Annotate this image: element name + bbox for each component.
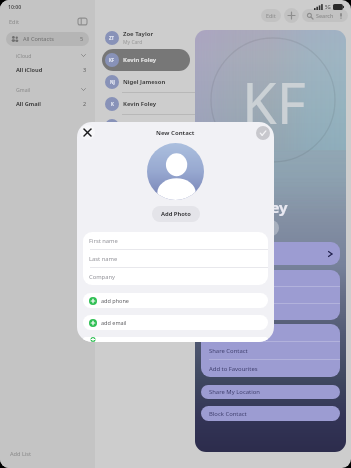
button[interactable]: Add List	[10, 444, 95, 464]
button[interactable]: mobile	[201, 270, 340, 286]
staticText: Last name	[89, 255, 118, 263]
staticText: 2	[83, 100, 87, 107]
staticText: home	[209, 291, 226, 299]
button[interactable]: Mail	[263, 220, 279, 236]
button[interactable]: Message	[203, 220, 219, 236]
button[interactable]: add email	[83, 315, 268, 330]
staticText: All Gmail	[16, 100, 41, 108]
staticText: All iCloud	[16, 66, 43, 74]
staticText: Company	[89, 273, 115, 281]
button[interactable]: Call	[223, 220, 239, 236]
staticText: Add to Favourites	[209, 365, 258, 373]
staticText: Kevin Foley	[123, 100, 157, 108]
button[interactable]: First name	[83, 232, 268, 250]
button[interactable]: NJ	[102, 71, 190, 93]
staticText: All Contacts	[23, 35, 54, 43]
staticText: 10:00	[8, 3, 22, 10]
staticText: Zoe Taylor	[123, 30, 154, 38]
staticText: work	[209, 308, 223, 316]
button[interactable]: work	[201, 304, 340, 320]
staticText: Nigel Jameson	[123, 78, 166, 86]
staticText: add email	[101, 319, 127, 326]
button[interactable]: All Gmail	[16, 96, 87, 111]
staticText: Add List	[10, 450, 31, 458]
button[interactable]: All Contacts	[6, 32, 89, 46]
button[interactable]: KF	[102, 49, 190, 71]
staticText: New Contact	[156, 129, 195, 137]
staticText: Block Contact	[209, 410, 247, 418]
button[interactable]: Share Contact	[201, 342, 340, 359]
button[interactable]: iCloud	[16, 49, 86, 62]
button[interactable]: Add contact	[284, 8, 299, 23]
button[interactable]: Block Contact	[201, 406, 340, 421]
staticText: K	[111, 101, 114, 107]
button[interactable]: Gmail	[16, 83, 86, 96]
button[interactable]: Toggle sidebar	[78, 17, 87, 26]
staticText: My Card	[123, 39, 143, 46]
staticText: Add Photo	[161, 210, 191, 218]
staticText: Kevin Foley	[203, 197, 288, 217]
button[interactable]: Add Photo	[152, 206, 200, 222]
button[interactable]: Contact photo	[147, 143, 204, 200]
button[interactable]: add phone	[83, 293, 268, 308]
button[interactable]: Close	[80, 125, 95, 140]
button[interactable]: All iCloud	[16, 62, 87, 77]
staticText: KF	[109, 57, 115, 63]
staticText: 5G	[325, 4, 331, 10]
button[interactable]: Contact Poster	[201, 242, 340, 265]
staticText: 3	[83, 66, 87, 73]
button[interactable]: Last name	[83, 250, 268, 268]
button[interactable]: K	[102, 93, 190, 115]
staticText: 5	[80, 35, 84, 43]
staticText: Edit	[266, 12, 276, 19]
staticText: Share My Location	[209, 388, 260, 396]
button[interactable]: Search	[302, 9, 348, 22]
button[interactable]	[83, 337, 268, 342]
button[interactable]: ZT	[102, 27, 190, 49]
staticText: KF	[242, 64, 306, 140]
staticText: Share Contact	[209, 347, 248, 355]
button[interactable]: Edit	[261, 9, 281, 22]
button[interactable]: home	[201, 287, 340, 303]
staticText: Send Message	[209, 329, 249, 337]
button[interactable]: Done	[256, 126, 270, 140]
button[interactable]: Share My Location	[201, 385, 340, 399]
staticText: Gmail	[16, 86, 31, 93]
staticText: ZT	[109, 35, 115, 41]
staticText: First name	[89, 237, 118, 245]
button[interactable]: Send Message	[201, 324, 340, 341]
staticText: Search	[316, 12, 334, 19]
staticText: add phone	[101, 297, 129, 304]
staticText: NJ	[110, 79, 115, 85]
button[interactable]: Add to Favourites	[201, 360, 340, 377]
button[interactable]: N	[102, 115, 190, 137]
staticText: Kevin Foley	[123, 56, 157, 64]
staticText: iCloud	[16, 52, 32, 59]
button[interactable]: Edit	[9, 18, 20, 26]
button[interactable]: Video	[243, 220, 259, 236]
button[interactable]: Company	[83, 268, 268, 285]
